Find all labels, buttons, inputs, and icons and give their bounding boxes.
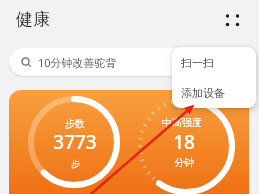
staticText: 健康 — [16, 9, 50, 30]
button[interactable]: 添加设备 — [172, 78, 256, 108]
staticText: 步数 — [65, 117, 85, 130]
staticText: 3773 — [53, 129, 97, 155]
staticText: 分钟 — [174, 156, 194, 169]
button[interactable]: 扫一扫 — [172, 47, 256, 78]
button[interactable]: 10分钟改善驼背 — [9, 48, 250, 76]
button[interactable] — [223, 11, 241, 29]
staticText: 扫一扫 — [181, 56, 214, 70]
button[interactable] — [9, 90, 249, 194]
staticText: 18 — [173, 129, 195, 155]
staticText: 步 — [71, 158, 80, 169]
staticText: 添加设备 — [181, 86, 225, 100]
staticText: 10分钟改善驼背 — [38, 55, 117, 70]
staticText: 中高强度 — [162, 116, 202, 129]
